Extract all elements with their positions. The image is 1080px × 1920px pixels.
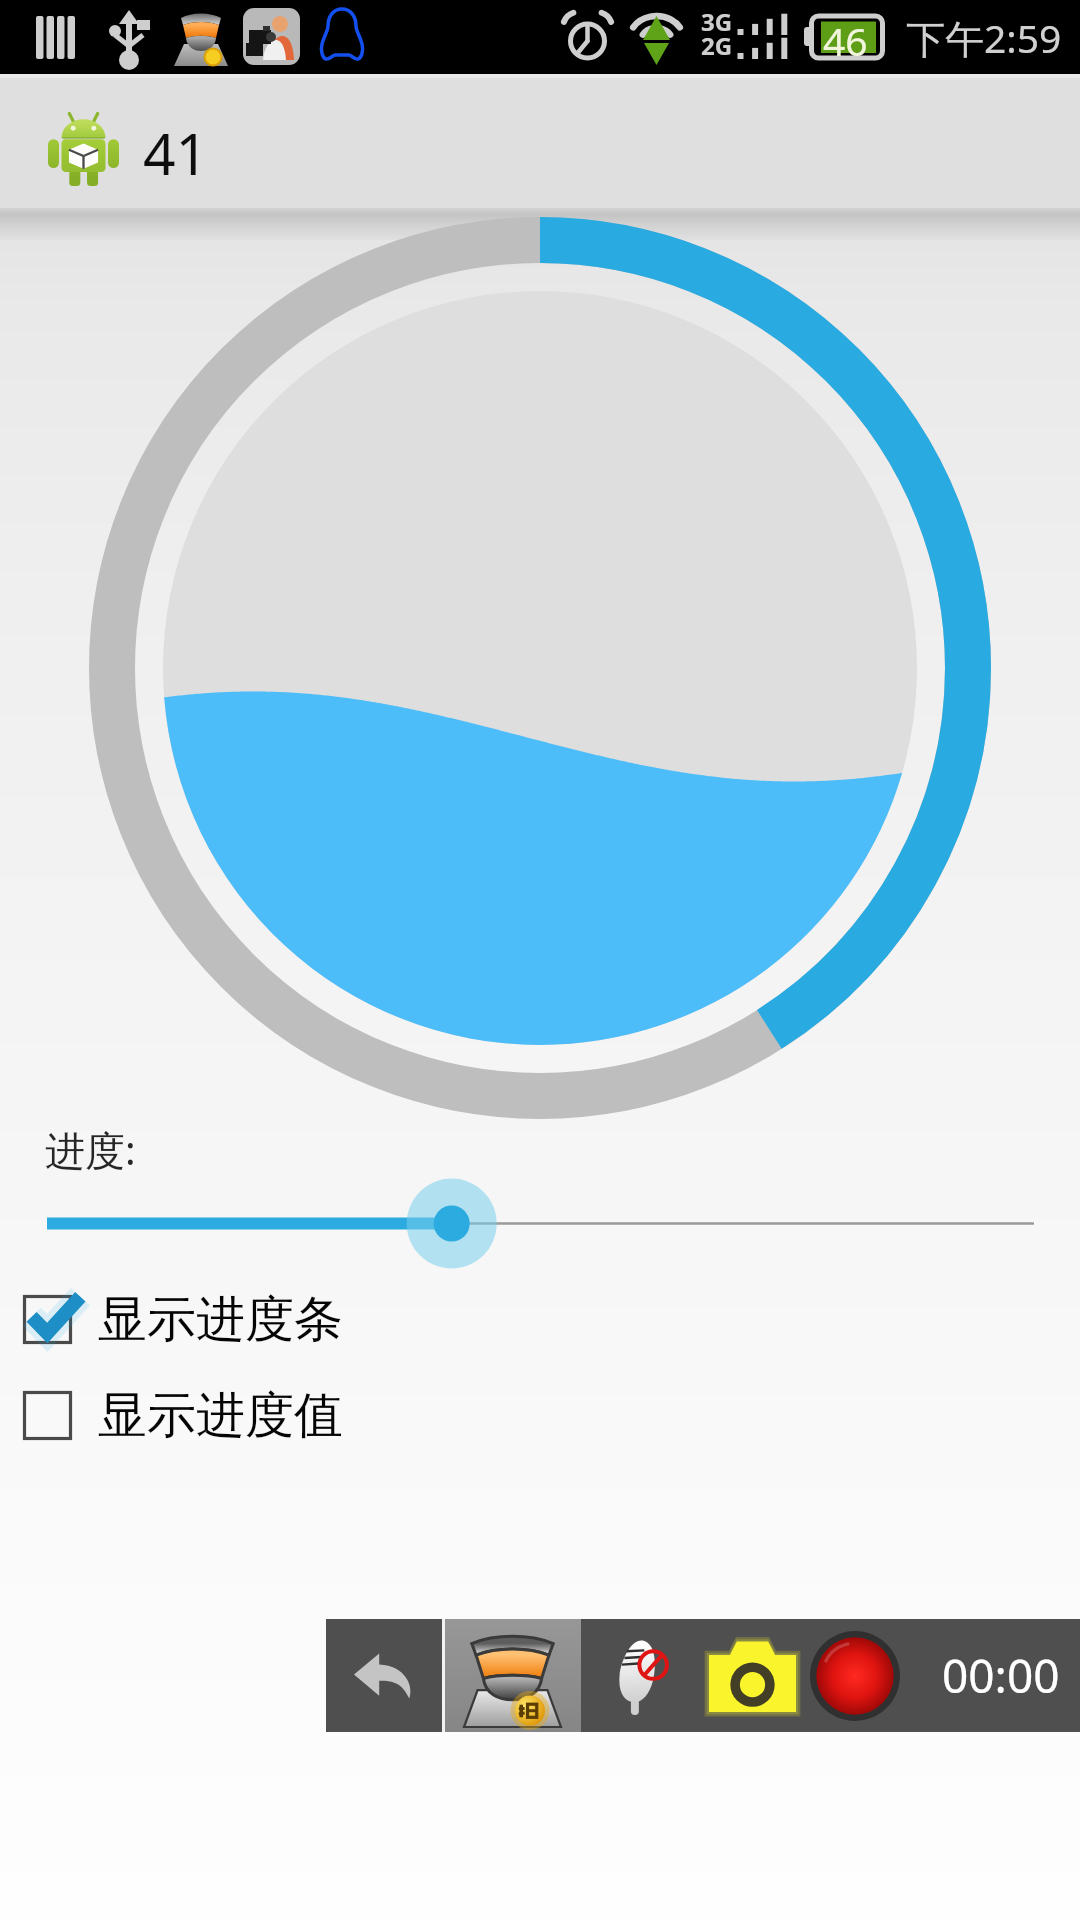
staticText: 46: [823, 14, 868, 67]
button[interactable]: Start recording: [800, 1619, 910, 1732]
button[interactable]: 显示进度条: [0, 1288, 1080, 1351]
button[interactable]: Capture mode: [445, 1619, 581, 1732]
button[interactable]: Back: [326, 1619, 442, 1732]
staticText: 进度:: [45, 1122, 136, 1177]
button[interactable]: Wave progress 41 percent: [89, 217, 991, 1119]
other: App icon: [48, 108, 119, 186]
staticText: 00:00: [942, 1644, 1060, 1707]
staticText: 3G: [701, 5, 733, 38]
staticText: 下午2:59: [906, 11, 1062, 64]
button[interactable]: Screenshot: [705, 1619, 800, 1732]
button[interactable]: Mute microphone: [581, 1619, 705, 1732]
button[interactable]: [0, 1178, 1080, 1270]
staticText: 显示进度值: [98, 1385, 343, 1447]
staticText: 41: [143, 114, 209, 192]
button[interactable]: App icon: [0, 74, 1080, 211]
button[interactable]: 显示进度值: [0, 1384, 1080, 1447]
staticText: 2G: [701, 29, 733, 62]
staticText: 显示进度条: [98, 1289, 343, 1351]
